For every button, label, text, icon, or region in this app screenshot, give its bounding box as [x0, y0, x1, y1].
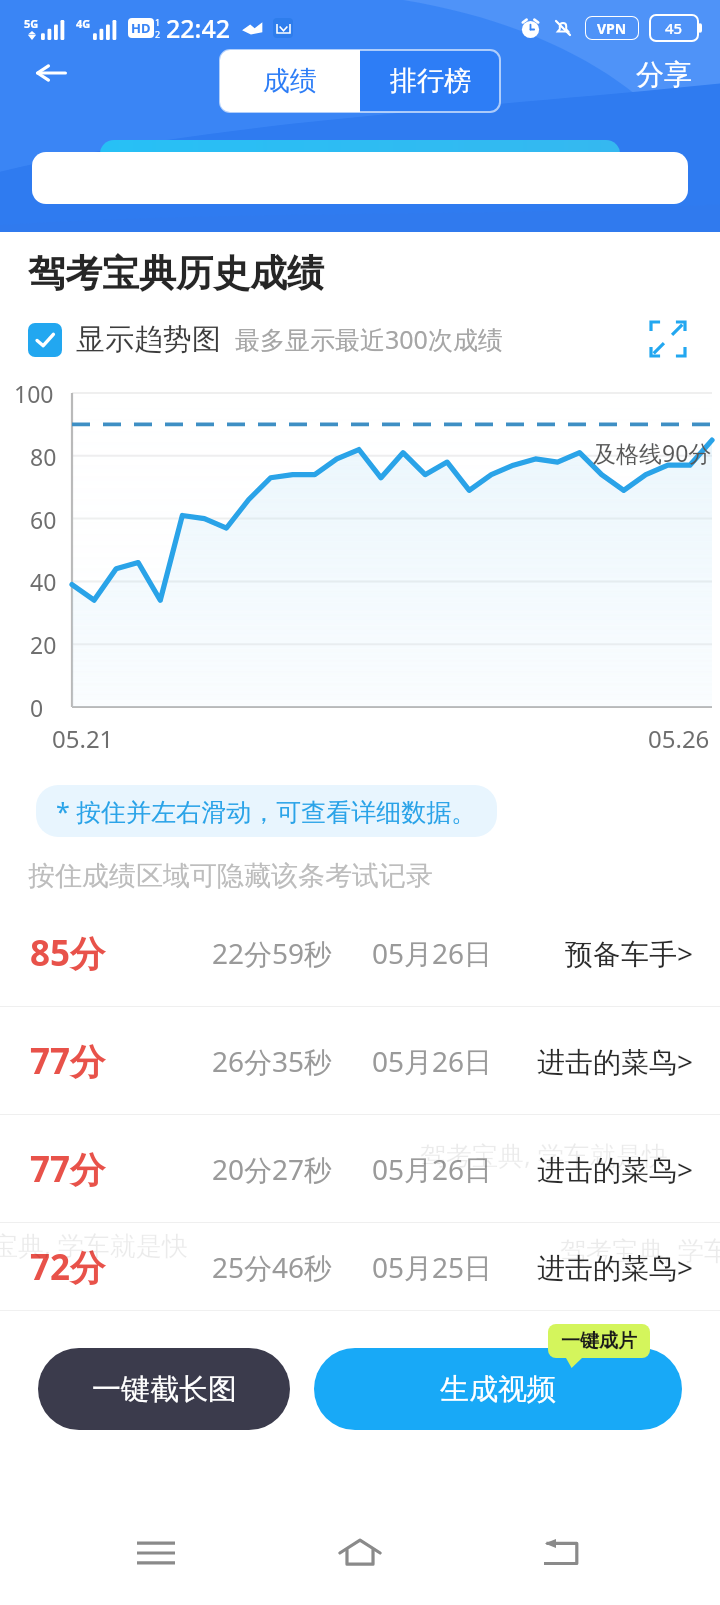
- button[interactable]: Home: [312, 1505, 408, 1601]
- staticText: 0: [30, 692, 44, 723]
- staticText: 按住成绩区域可隐藏该条考试记录: [28, 859, 433, 893]
- staticText: 05月26日: [372, 1150, 493, 1188]
- staticText: 5G: [24, 16, 39, 31]
- button[interactable]: 72分: [0, 1223, 720, 1310]
- staticText: 20分27秒: [212, 1150, 333, 1188]
- button[interactable]: 排行榜: [360, 50, 500, 112]
- button[interactable]: 生成视频: [314, 1348, 682, 1430]
- staticText: 驾考宝典历史成绩: [28, 250, 324, 297]
- staticText: HD: [131, 19, 151, 37]
- button[interactable]: 分享: [630, 49, 698, 100]
- staticText: 1: [155, 16, 161, 28]
- staticText: 预备车手>: [565, 934, 694, 972]
- button[interactable]: 显示趋势图: [28, 321, 221, 358]
- button[interactable]: Recents: [108, 1505, 204, 1601]
- staticText: 77分: [30, 1145, 106, 1193]
- staticText: VPN: [597, 19, 627, 38]
- staticText: 22:42: [166, 11, 231, 45]
- staticText: 05月25日: [372, 1248, 493, 1286]
- staticText: 及格线90分: [593, 437, 712, 468]
- staticText: 分享: [636, 57, 692, 92]
- staticText: 驾考宝典, 学车就是快: [0, 1227, 188, 1263]
- staticText: 77分: [30, 1037, 106, 1085]
- button[interactable]: Back: [516, 1505, 612, 1601]
- staticText: 驾考宝典, 学车就是快: [130, 1347, 378, 1383]
- staticText: 成绩: [263, 64, 317, 98]
- staticText: 进击的菜鸟>: [537, 1042, 694, 1080]
- staticText: 05.26: [648, 722, 710, 755]
- staticText: 20: [30, 629, 57, 660]
- staticText: 一键截长图: [92, 1371, 237, 1408]
- button[interactable]: 77分: [0, 1115, 720, 1222]
- staticText: 显示趋势图: [76, 321, 221, 358]
- staticText: 4G: [76, 16, 91, 31]
- button[interactable]: 85分: [0, 899, 720, 1006]
- staticText: 45: [665, 18, 683, 38]
- staticText: 进击的菜鸟>: [537, 1248, 694, 1286]
- staticText: 05月26日: [372, 934, 493, 972]
- staticText: 80: [30, 441, 57, 472]
- staticText: 2: [155, 28, 161, 40]
- staticText: 25分46秒: [212, 1248, 333, 1286]
- staticText: 驾考宝典, 学车就是快: [20, 1537, 268, 1573]
- staticText: 22分59秒: [212, 934, 333, 972]
- staticText: 40: [30, 566, 57, 597]
- button[interactable]: 一键截长图: [38, 1348, 290, 1430]
- staticText: 05月26日: [372, 1042, 493, 1080]
- staticText: 排行榜: [390, 64, 471, 98]
- button[interactable]: Fullscreen: [642, 313, 694, 365]
- staticText: 60: [30, 504, 57, 535]
- staticText: 72分: [30, 1243, 106, 1291]
- button[interactable]: Back: [18, 40, 84, 106]
- staticText: 驾考宝典, 学车就是快: [420, 1137, 668, 1173]
- staticText: 进击的菜鸟>: [537, 1150, 694, 1188]
- staticText: * 按住并左右滑动，可查看详细数据。: [56, 794, 477, 828]
- button[interactable]: 77分: [0, 1007, 720, 1114]
- staticText: 100: [14, 378, 54, 409]
- staticText: 最多显示最近300次成绩: [235, 322, 503, 356]
- staticText: 05.21: [52, 722, 114, 755]
- staticText: 驾考宝典, 学车就是快: [620, 1367, 720, 1403]
- staticText: 85分: [30, 929, 106, 977]
- staticText: 生成视频: [440, 1371, 556, 1408]
- button[interactable]: 成绩: [220, 50, 360, 112]
- staticText: 一键成片: [561, 1329, 637, 1353]
- staticText: 驾考宝典, 学车就是快: [560, 1232, 720, 1268]
- staticText: 26分35秒: [212, 1042, 333, 1080]
